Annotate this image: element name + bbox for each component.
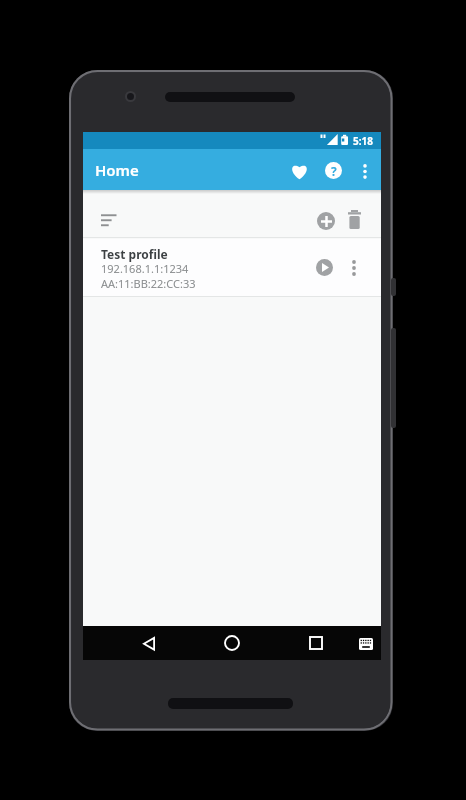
button[interactable] bbox=[218, 629, 246, 657]
button[interactable] bbox=[317, 212, 335, 230]
button[interactable] bbox=[302, 629, 330, 657]
staticText: 5:18 bbox=[353, 134, 373, 148]
button[interactable] bbox=[357, 159, 373, 183]
staticText: AA:11:BB:22:CC:33 bbox=[101, 276, 196, 291]
button[interactable] bbox=[95, 209, 123, 231]
button[interactable] bbox=[83, 239, 381, 296]
button[interactable] bbox=[346, 256, 362, 280]
button[interactable] bbox=[135, 630, 162, 657]
button[interactable] bbox=[290, 162, 308, 180]
button[interactable] bbox=[316, 259, 333, 276]
staticText: ? bbox=[331, 163, 337, 179]
staticText: 192.168.1.1:1234 bbox=[101, 261, 189, 276]
button[interactable] bbox=[353, 633, 379, 655]
button[interactable] bbox=[344, 207, 364, 232]
button[interactable]: ? bbox=[325, 162, 342, 179]
staticText: Home bbox=[95, 160, 139, 180]
staticText: Test profile bbox=[101, 246, 168, 262]
